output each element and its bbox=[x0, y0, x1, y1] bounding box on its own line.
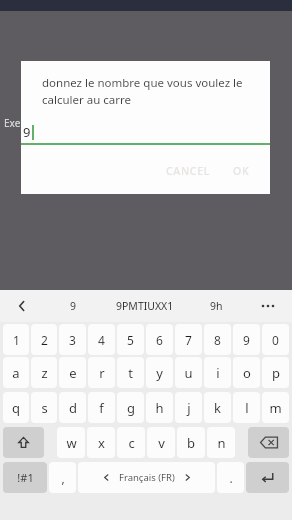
button[interactable]: 9 bbox=[44, 290, 102, 322]
staticText: j bbox=[187, 399, 191, 417]
staticText: q bbox=[12, 399, 20, 417]
button[interactable]: 9PMTIUXX1 bbox=[102, 290, 188, 322]
staticText: Français (FR) bbox=[119, 471, 175, 484]
button[interactable]: r bbox=[88, 357, 115, 388]
button[interactable]: x bbox=[87, 427, 115, 458]
button[interactable]: m bbox=[262, 392, 289, 423]
staticText: w bbox=[66, 434, 77, 452]
button[interactable]: 6 bbox=[146, 324, 173, 355]
button[interactable]: 5 bbox=[117, 324, 144, 355]
button[interactable]: 0 bbox=[262, 324, 289, 355]
staticText: a bbox=[12, 364, 20, 382]
button[interactable]: t bbox=[117, 357, 144, 388]
staticText: 8 bbox=[214, 332, 221, 348]
button[interactable]: u bbox=[175, 357, 202, 388]
staticText: 4 bbox=[98, 332, 105, 348]
staticText: 6 bbox=[156, 332, 163, 348]
button[interactable]: l bbox=[233, 392, 260, 423]
button[interactable]: 3 bbox=[59, 324, 86, 355]
staticText: k bbox=[214, 399, 221, 417]
staticText: i bbox=[216, 364, 220, 382]
staticText: g bbox=[127, 399, 135, 417]
staticText: Exe bbox=[4, 116, 21, 130]
button[interactable]: s bbox=[31, 392, 57, 423]
staticText: x bbox=[98, 434, 105, 452]
staticText: z bbox=[41, 364, 48, 382]
staticText: 9 bbox=[70, 299, 77, 313]
staticText: 9 bbox=[23, 123, 31, 141]
button[interactable]: Backspace bbox=[248, 427, 289, 458]
staticText: 1 bbox=[13, 332, 20, 348]
staticText: r bbox=[99, 364, 105, 382]
button[interactable]: Previous suggestions bbox=[0, 290, 44, 322]
staticText: CANCEL bbox=[166, 164, 211, 178]
button[interactable]: OK bbox=[225, 158, 258, 184]
button[interactable]: Shift bbox=[3, 427, 44, 458]
button[interactable]: q bbox=[3, 392, 29, 423]
staticText: u bbox=[184, 364, 193, 382]
staticText: s bbox=[41, 399, 48, 417]
staticText: v bbox=[158, 434, 165, 452]
staticText: y bbox=[156, 364, 163, 382]
staticText: b bbox=[187, 434, 195, 452]
button[interactable]: i bbox=[204, 357, 231, 388]
button[interactable]: c bbox=[117, 427, 145, 458]
staticText: p bbox=[272, 364, 280, 382]
button[interactable]: d bbox=[59, 392, 86, 423]
staticText: 5 bbox=[127, 332, 134, 348]
button[interactable]: g bbox=[117, 392, 144, 423]
button[interactable]: n bbox=[207, 427, 235, 458]
button[interactable]: !#1 bbox=[3, 462, 47, 493]
staticText: 7 bbox=[185, 332, 192, 348]
staticText: m bbox=[269, 399, 282, 417]
staticText: . bbox=[229, 470, 233, 486]
button[interactable]: k bbox=[204, 392, 231, 423]
button[interactable]: a bbox=[3, 357, 29, 388]
staticText: donnez le nombre que vous voulez le calc… bbox=[42, 75, 256, 107]
button[interactable]: p bbox=[262, 357, 289, 388]
button[interactable]: More options bbox=[244, 290, 292, 322]
button[interactable]: e bbox=[59, 357, 86, 388]
staticText: d bbox=[69, 399, 77, 417]
button[interactable]: y bbox=[146, 357, 173, 388]
staticText: n bbox=[217, 434, 226, 452]
button[interactable]: Français (FR) bbox=[78, 462, 215, 493]
button[interactable]: b bbox=[177, 427, 205, 458]
staticText: 9h bbox=[210, 299, 223, 313]
button[interactable]: Enter bbox=[246, 462, 289, 493]
button[interactable]: 9h bbox=[188, 290, 244, 322]
button[interactable]: . bbox=[217, 462, 244, 493]
button[interactable]: 8 bbox=[204, 324, 231, 355]
staticText: f bbox=[99, 399, 104, 417]
staticText: t bbox=[128, 364, 133, 382]
staticText: 9PMTIUXX1 bbox=[116, 299, 174, 313]
staticText: h bbox=[155, 399, 164, 417]
button[interactable]: o bbox=[233, 357, 260, 388]
button[interactable]: v bbox=[147, 427, 175, 458]
staticText: OK bbox=[233, 164, 250, 178]
button[interactable]: , bbox=[49, 462, 76, 493]
staticText: c bbox=[128, 434, 135, 452]
button[interactable]: h bbox=[146, 392, 173, 423]
button[interactable]: CANCEL bbox=[158, 158, 219, 184]
button[interactable]: w bbox=[57, 427, 85, 458]
button[interactable]: 1 bbox=[3, 324, 29, 355]
button[interactable]: j bbox=[175, 392, 202, 423]
button[interactable]: z bbox=[31, 357, 57, 388]
button[interactable]: 9 bbox=[233, 324, 260, 355]
staticText: e bbox=[69, 364, 77, 382]
button[interactable]: 2 bbox=[31, 324, 57, 355]
staticText: l bbox=[245, 399, 249, 417]
staticText: o bbox=[243, 364, 251, 382]
staticText: !#1 bbox=[17, 470, 34, 485]
staticText: 9 bbox=[243, 332, 250, 348]
staticText: , bbox=[61, 470, 65, 486]
button[interactable]: 4 bbox=[88, 324, 115, 355]
staticText: 2 bbox=[41, 332, 48, 348]
button[interactable]: f bbox=[88, 392, 115, 423]
button[interactable]: 7 bbox=[175, 324, 202, 355]
staticText: 3 bbox=[69, 332, 76, 348]
staticText: 0 bbox=[272, 332, 279, 348]
